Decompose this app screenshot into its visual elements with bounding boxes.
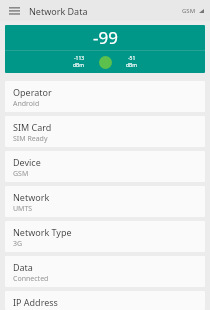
button[interactable]: -99 xyxy=(5,25,205,73)
staticText: dBm xyxy=(73,62,85,69)
button[interactable]: GSM xyxy=(182,7,210,15)
staticText: dBm xyxy=(126,62,138,69)
staticText: Android xyxy=(13,99,40,109)
staticText: Operator xyxy=(13,86,52,98)
staticText: SIM Ready xyxy=(13,134,48,144)
button[interactable]: Device xyxy=(5,151,205,182)
staticText: IP Address xyxy=(13,296,58,308)
staticText: Data xyxy=(13,261,33,273)
button[interactable]: Operator xyxy=(5,81,205,112)
button[interactable]: Data xyxy=(5,256,205,287)
button[interactable]: Network Type xyxy=(5,221,205,252)
staticText: Connected xyxy=(13,274,49,284)
staticText: Network Type xyxy=(13,226,72,238)
staticText: 3G xyxy=(13,239,23,249)
staticText: -51 xyxy=(128,55,136,62)
button[interactable]: IP Address xyxy=(5,291,205,310)
staticText: SIM Card xyxy=(13,121,52,133)
button[interactable]: Network xyxy=(5,186,205,217)
button[interactable]: Open navigation menu xyxy=(6,3,22,19)
staticText: Device xyxy=(13,156,41,168)
staticText: Network Data xyxy=(29,5,88,17)
button[interactable]: SIM Card xyxy=(5,116,205,147)
staticText: -113 xyxy=(74,55,85,62)
staticText: Network xyxy=(13,191,50,203)
staticText: -99 xyxy=(93,26,118,49)
staticText: UMTS xyxy=(13,204,33,214)
staticText: GSM xyxy=(182,7,196,15)
staticText: GSM xyxy=(13,169,29,179)
